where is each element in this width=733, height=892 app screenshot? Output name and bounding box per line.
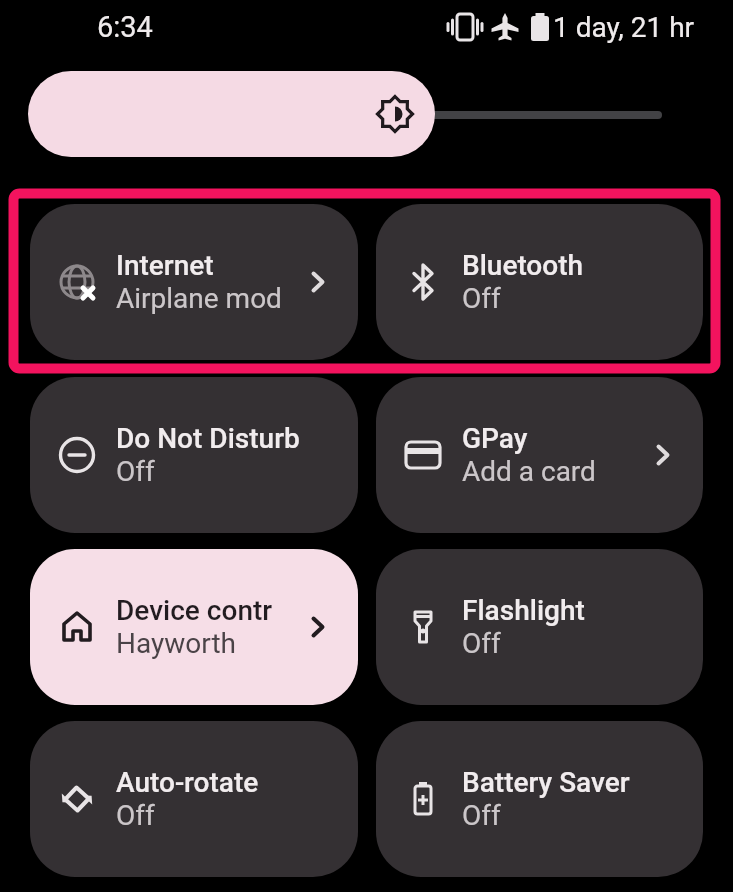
- button[interactable]: GPay: [376, 377, 703, 533]
- staticText: Device contr: [116, 594, 273, 627]
- staticText: Airplane mod: [116, 282, 282, 315]
- button[interactable]: Auto-rotate: [30, 721, 358, 877]
- staticText: GPay: [462, 422, 528, 455]
- staticText: Bluetooth: [462, 249, 584, 282]
- staticText: Off: [462, 282, 501, 315]
- button[interactable]: Flashlight: [376, 549, 703, 705]
- staticText: Off: [116, 799, 155, 832]
- staticText: Add a card: [462, 455, 596, 488]
- staticText: Off: [462, 799, 501, 832]
- staticText: Do Not Disturb: [116, 422, 300, 455]
- button[interactable]: Internet: [30, 204, 358, 360]
- button[interactable]: Battery Saver: [376, 721, 703, 877]
- button[interactable]: [28, 71, 435, 157]
- staticText: Auto-rotate: [116, 766, 259, 799]
- staticText: Battery Saver: [462, 766, 630, 799]
- staticText: Off: [462, 627, 501, 660]
- button[interactable]: Device contr: [30, 549, 358, 705]
- staticText: Hayworth: [116, 627, 237, 660]
- staticText: Off: [116, 455, 155, 488]
- staticText: Internet: [116, 249, 214, 282]
- staticText: 6:34: [97, 10, 153, 44]
- staticText: 1 day, 21 hr: [553, 11, 695, 44]
- button[interactable]: Do Not Disturb: [30, 377, 358, 533]
- button[interactable]: Bluetooth: [376, 204, 703, 360]
- staticText: Flashlight: [462, 594, 585, 627]
